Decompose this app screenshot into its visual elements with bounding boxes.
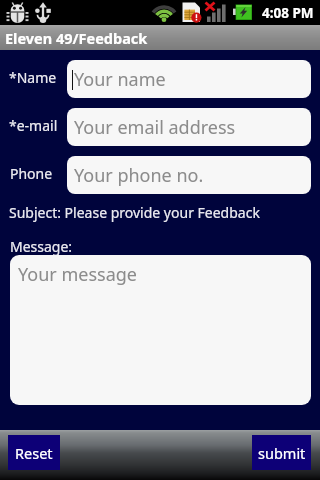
other: Battery charging	[232, 4, 254, 21]
staticText: Phone	[10, 164, 53, 183]
other: Wi-Fi signal	[152, 2, 178, 23]
other: No SIM card	[182, 2, 202, 24]
button[interactable]: submit	[252, 435, 311, 470]
staticText: Message:	[10, 237, 73, 256]
staticText: Your email address	[74, 115, 236, 140]
staticText: Your name	[74, 67, 166, 92]
staticText: Your phone no.	[74, 163, 204, 188]
button[interactable]: Your email address	[67, 108, 311, 146]
staticText: *e-mail	[9, 116, 58, 135]
staticText: *Name	[9, 68, 57, 87]
other: USB debugging enabled	[6, 1, 29, 24]
staticText: Reset	[15, 443, 53, 463]
staticText: submit	[258, 443, 306, 463]
button[interactable]: Your message	[10, 255, 311, 405]
staticText: 4:08 PM	[262, 4, 314, 22]
button[interactable]: Your phone no.	[67, 156, 311, 194]
staticText: Subject: Please provide your Feedback	[9, 203, 260, 222]
other: No mobile signal	[203, 1, 229, 24]
staticText: Your message	[18, 262, 137, 287]
button[interactable]: Reset	[8, 435, 60, 470]
staticText: Eleven 49/Feedback	[5, 28, 148, 48]
button[interactable]: Your name	[67, 60, 311, 98]
other: USB connected	[33, 1, 53, 24]
